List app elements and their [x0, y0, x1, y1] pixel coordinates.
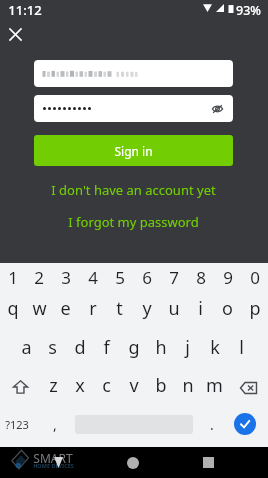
staticText: y: [142, 296, 152, 321]
button[interactable]: I don't have an account yet: [34, 179, 233, 201]
staticText: i: [198, 296, 203, 321]
button[interactable]: g: [120, 328, 147, 366]
button[interactable]: 8: [187, 263, 214, 292]
button[interactable]: e: [52, 289, 79, 327]
staticText: 2: [34, 266, 44, 289]
button[interactable]: Shift: [0, 366, 40, 404]
button[interactable]: .: [193, 405, 231, 443]
button[interactable]: Enter: [234, 413, 256, 435]
staticText: b: [155, 373, 167, 398]
staticText: 8: [196, 266, 206, 289]
staticText: HOME DEVICES: [33, 462, 74, 469]
button[interactable]: b: [147, 366, 174, 404]
staticText: e: [60, 296, 71, 321]
button[interactable]: w: [26, 289, 52, 327]
button[interactable]: r: [79, 289, 106, 327]
staticText: w: [32, 296, 47, 321]
staticText: v: [129, 373, 139, 398]
staticText: f: [103, 335, 110, 360]
button[interactable]: l: [228, 328, 255, 366]
staticText: ?123: [5, 417, 29, 432]
staticText: n: [182, 373, 194, 398]
button[interactable]: q: [0, 289, 26, 327]
staticText: a: [21, 335, 32, 360]
staticText: Sign in: [114, 143, 153, 159]
staticText: 9: [223, 266, 233, 289]
staticText: 3: [61, 266, 71, 289]
staticText: I forgot my password: [68, 213, 199, 231]
staticText: 0: [250, 266, 260, 289]
staticText: j: [185, 335, 190, 360]
button[interactable]: [34, 60, 233, 87]
button[interactable]: Backspace: [228, 366, 268, 404]
button[interactable]: 6: [133, 263, 160, 292]
button[interactable]: h: [147, 328, 174, 366]
staticText: m: [206, 373, 223, 398]
staticText: ,: [53, 415, 57, 434]
button[interactable]: t: [106, 289, 133, 327]
button[interactable]: Show password: [210, 102, 224, 116]
button[interactable]: 4: [79, 263, 106, 292]
staticText: 11:12: [8, 1, 42, 19]
button[interactable]: Home: [121, 447, 145, 478]
button[interactable]: z: [40, 366, 66, 404]
button[interactable]: k: [201, 328, 228, 366]
button[interactable]: o: [214, 289, 241, 327]
staticText: 7: [169, 266, 179, 289]
button[interactable]: 9: [214, 263, 241, 292]
button[interactable]: Recents: [196, 447, 220, 478]
staticText: 5: [115, 266, 125, 289]
staticText: u: [168, 296, 180, 321]
button[interactable]: 3: [52, 263, 79, 292]
button[interactable]: x: [66, 366, 93, 404]
staticText: I don't have an account yet: [51, 181, 216, 199]
button[interactable]: 7: [160, 263, 187, 292]
staticText: k: [210, 335, 220, 360]
button[interactable]: ,: [34, 405, 75, 443]
button[interactable]: v: [120, 366, 147, 404]
button[interactable]: f: [93, 328, 120, 366]
button[interactable]: Close: [5, 24, 25, 44]
button[interactable]: s: [39, 328, 66, 366]
staticText: 93%: [236, 2, 261, 19]
button[interactable]: y: [133, 289, 160, 327]
staticText: r: [89, 296, 97, 321]
button[interactable]: u: [160, 289, 187, 327]
staticText: p: [249, 296, 261, 321]
button[interactable]: ?123: [0, 405, 34, 443]
staticText: s: [48, 335, 57, 360]
button[interactable]: a: [13, 328, 39, 366]
button[interactable]: c: [93, 366, 120, 404]
staticText: SMART: [33, 450, 73, 466]
staticText: z: [49, 373, 58, 398]
staticText: 4: [88, 266, 98, 289]
staticText: l: [239, 335, 244, 360]
button[interactable]: d: [66, 328, 93, 366]
button[interactable]: n: [174, 366, 201, 404]
staticText: h: [155, 335, 167, 360]
staticText: q: [7, 296, 19, 321]
button[interactable]: Show password: [34, 95, 233, 122]
button[interactable]: Sign in: [34, 135, 233, 166]
staticText: .: [210, 415, 214, 434]
button[interactable]: m: [201, 366, 228, 404]
button[interactable]: 2: [26, 263, 52, 292]
button[interactable]: 1: [0, 263, 26, 292]
button[interactable]: 0: [241, 263, 268, 292]
button[interactable]: 5: [106, 263, 133, 292]
staticText: o: [222, 296, 233, 321]
staticText: 1: [8, 266, 18, 289]
staticText: d: [74, 335, 86, 360]
staticText: 6: [142, 266, 152, 289]
staticText: c: [102, 373, 111, 398]
button[interactable]: p: [241, 289, 268, 327]
button[interactable]: I forgot my password: [34, 211, 233, 233]
button[interactable]: j: [174, 328, 201, 366]
staticText: x: [75, 373, 85, 398]
staticText: g: [128, 335, 140, 360]
staticText: t: [116, 296, 123, 321]
button[interactable]: i: [187, 289, 214, 327]
button[interactable]: Back: [46, 447, 70, 478]
